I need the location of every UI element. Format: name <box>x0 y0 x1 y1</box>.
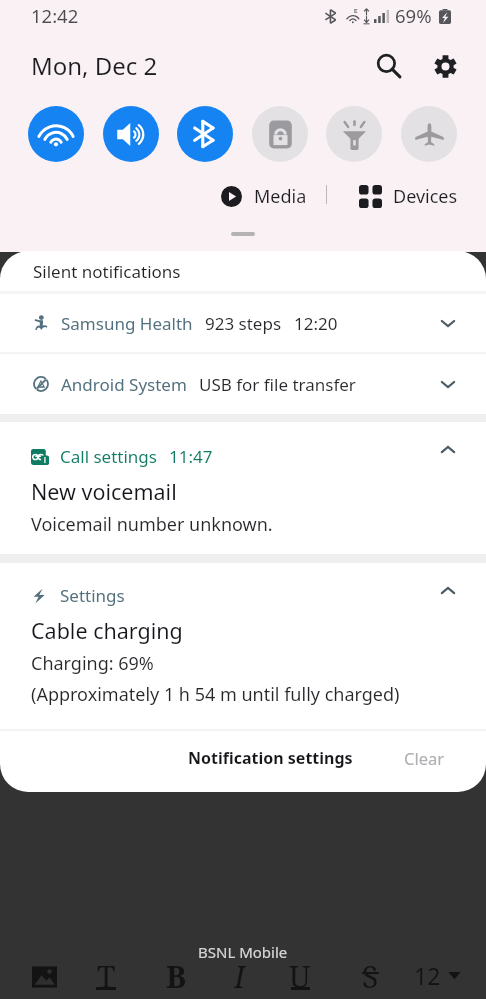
button[interactable]: Media <box>215 180 313 213</box>
staticText: Devices <box>393 184 458 209</box>
button[interactable]: Collapse <box>426 427 470 471</box>
button[interactable]: T <box>89 956 123 990</box>
staticText: Call settings <box>60 445 157 468</box>
staticText: 12 <box>414 960 441 991</box>
staticText: Notification settings <box>188 747 353 769</box>
staticText: Cable charging <box>31 616 183 645</box>
staticText: Voicemail number unknown. <box>31 512 273 537</box>
button[interactable]: Android System <box>0 354 486 414</box>
button[interactable]: Expand <box>426 362 470 406</box>
button[interactable]: Airplane mode <box>401 106 457 162</box>
staticText: Clear <box>404 747 445 769</box>
staticText: Media <box>254 184 307 209</box>
button[interactable]: Clear <box>394 735 455 781</box>
button[interactable]: 12 <box>414 960 461 991</box>
button[interactable]: Search <box>361 38 417 94</box>
button[interactable]: Collapse <box>426 568 470 612</box>
button[interactable]: Samsung Health <box>0 294 486 352</box>
staticText: U <box>289 956 311 990</box>
staticText: 12:42 <box>31 3 79 28</box>
button[interactable]: B <box>159 956 193 990</box>
button[interactable]: I <box>223 956 257 990</box>
staticText: 12:20 <box>294 312 338 335</box>
staticText: New voicemail <box>31 477 177 506</box>
staticText: (Approximately 1 h 54 m until fully char… <box>31 682 400 707</box>
staticText: BSNL Mobile <box>198 942 288 962</box>
staticText: 11:47 <box>169 445 213 468</box>
staticText: Samsung Health <box>61 312 193 335</box>
button[interactable]: Bluetooth <box>177 106 233 162</box>
button[interactable]: Expand <box>426 301 470 345</box>
staticText: 69% <box>395 3 432 28</box>
staticText: S <box>362 956 379 990</box>
button[interactable]: Devices <box>353 180 464 213</box>
button[interactable]: Wi-Fi <box>28 106 84 162</box>
staticText: Settings <box>60 584 125 607</box>
button[interactable]: Notification settings <box>178 735 363 781</box>
button[interactable]: Settings <box>0 563 486 729</box>
staticText: USB for file transfer <box>199 373 356 396</box>
button[interactable]: Flashlight <box>326 106 382 162</box>
button[interactable]: U <box>283 956 317 990</box>
button[interactable]: Insert image <box>30 963 58 991</box>
staticText: Charging: 69% <box>31 651 154 676</box>
staticText: B <box>166 956 187 990</box>
staticText: 923 steps <box>205 312 282 335</box>
staticText: I <box>234 956 246 990</box>
staticText: Mon, Dec 2 <box>31 49 158 82</box>
button[interactable]: Sound <box>103 106 159 162</box>
button[interactable]: Auto rotate lock <box>252 106 308 162</box>
staticText: T <box>97 956 116 990</box>
button[interactable]: Call settings <box>0 422 486 554</box>
button[interactable]: S <box>353 956 387 990</box>
button[interactable]: Settings <box>417 38 473 94</box>
staticText: Silent notifications <box>33 260 181 283</box>
staticText: Android System <box>61 373 187 396</box>
